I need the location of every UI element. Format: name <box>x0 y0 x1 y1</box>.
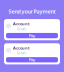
button[interactable]: Pay <box>6 33 58 38</box>
staticText: Account <box>13 21 30 26</box>
staticText: Account <box>13 45 30 50</box>
staticText: Send your Payment <box>8 8 55 15</box>
button[interactable]: Pay <box>6 57 58 62</box>
staticText: Details <box>17 52 26 55</box>
staticText: Pay <box>29 57 35 62</box>
staticText: Details <box>17 27 26 31</box>
staticText: Pay <box>29 33 35 38</box>
